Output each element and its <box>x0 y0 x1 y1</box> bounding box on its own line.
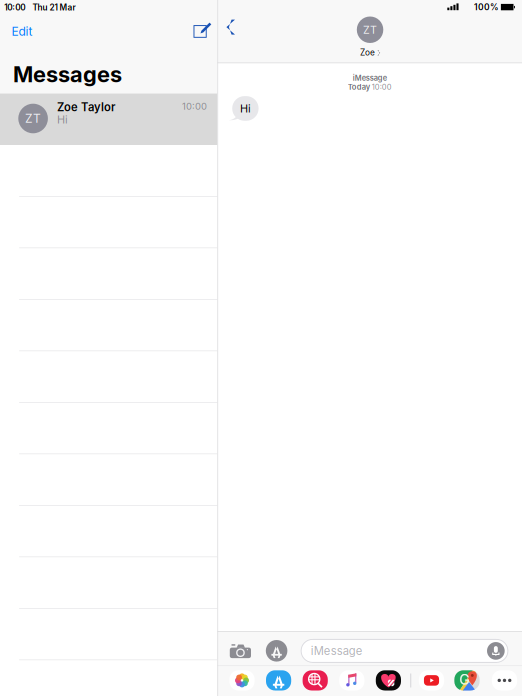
staticText: Hi <box>240 102 251 115</box>
staticText: iMessage <box>311 644 363 658</box>
staticText: Messages <box>13 61 122 87</box>
staticText: iMessage <box>353 74 387 83</box>
staticText: 10:00 <box>372 82 392 91</box>
button[interactable]: Photos <box>229 670 255 690</box>
button[interactable]: App Store <box>266 640 287 662</box>
button[interactable]: Edit <box>4 23 40 40</box>
button[interactable]: Zoe <box>357 16 383 43</box>
button[interactable]: Maps <box>454 670 480 690</box>
staticText: Edit <box>11 24 32 39</box>
staticText: 100% <box>474 2 499 12</box>
button[interactable]: More <box>492 670 517 690</box>
button[interactable]: Music <box>339 670 364 690</box>
staticText: 10:00 <box>182 101 207 112</box>
staticText: ZT <box>25 111 41 126</box>
staticText: ZT <box>363 23 377 36</box>
button[interactable]: App Store <box>266 670 291 690</box>
button[interactable]: ZT <box>0 93 217 145</box>
button[interactable]: Back <box>226 20 246 35</box>
staticText: Today <box>348 82 370 91</box>
button[interactable]: YouTube <box>419 670 444 690</box>
button[interactable]: Zoe <box>360 48 380 58</box>
staticText: Hi <box>57 113 68 126</box>
button[interactable]: Stickers <box>303 670 328 690</box>
staticText: Zoe Taylor <box>57 100 115 114</box>
button[interactable]: Compose <box>192 21 212 39</box>
staticText: Zoe <box>360 48 375 58</box>
staticText: 10:00 <box>4 2 25 12</box>
staticText: G <box>459 671 470 688</box>
button[interactable]: Fitness <box>376 670 401 690</box>
staticText: Thu 21 Mar <box>32 2 75 12</box>
button[interactable]: Camera <box>230 643 251 658</box>
